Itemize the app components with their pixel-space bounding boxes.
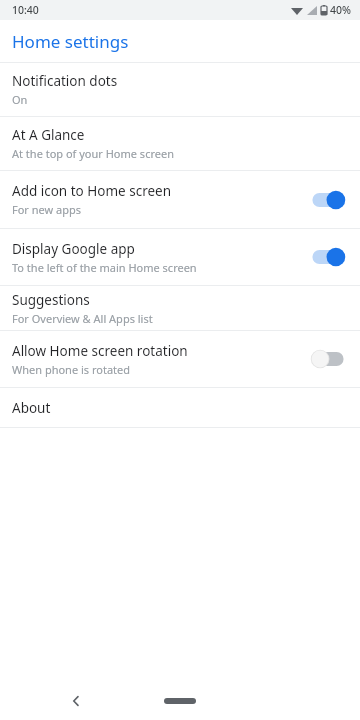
staticText: On [12,92,28,107]
button[interactable]: Switch off [309,346,347,372]
staticText: At the top of your Home screen [12,146,174,161]
button[interactable]: Allow Home screen rotation [0,331,360,387]
staticText: Notification dots [12,72,118,90]
staticText: 40% [330,3,351,17]
staticText: Suggestions [12,291,90,309]
button[interactable]: About [0,388,360,427]
staticText: Display Google app [12,240,135,258]
button[interactable]: Switch on [309,244,347,270]
staticText: About [12,399,51,417]
staticText: For Overview & All Apps list [12,311,153,326]
button[interactable]: Back [64,689,88,713]
staticText: Allow Home screen rotation [12,342,188,360]
button[interactable]: At A Glance [0,117,360,170]
button[interactable]: Notification dots [0,63,360,116]
button[interactable]: Suggestions [0,286,360,330]
staticText: At A Glance [12,126,85,144]
staticText: For new apps [12,202,82,217]
button[interactable]: Display Google app [0,229,360,285]
staticText: Add icon to Home screen [12,182,172,200]
staticText: To the left of the main Home screen [12,260,197,275]
staticText: When phone is rotated [12,362,130,377]
staticText: Home settings [12,30,129,53]
button[interactable]: Switch on [309,187,347,213]
button[interactable]: Home [148,689,212,713]
button[interactable]: Add icon to Home screen [0,171,360,228]
staticText: 10:40 [12,3,39,17]
